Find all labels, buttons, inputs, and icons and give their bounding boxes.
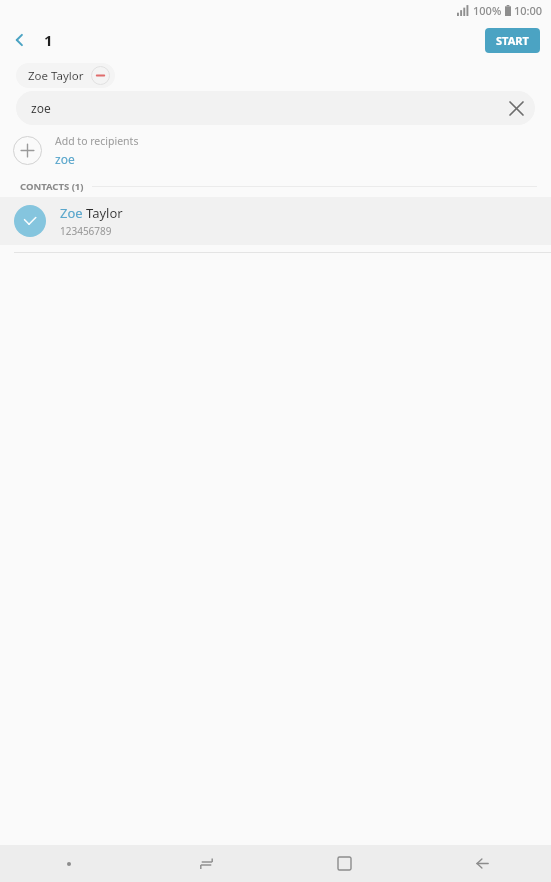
- button[interactable]: START: [485, 28, 540, 53]
- staticText: zoe: [55, 151, 75, 167]
- staticText: START: [496, 33, 529, 48]
- button[interactable]: Back: [0, 20, 40, 60]
- button[interactable]: Add to recipients: [0, 125, 551, 175]
- staticText: Zoe Taylor: [60, 204, 123, 222]
- staticText: 10:00: [514, 3, 543, 18]
- button[interactable]: Clear search: [502, 94, 530, 122]
- button[interactable]: Recents: [137, 845, 275, 882]
- button[interactable]: Back: [413, 845, 551, 882]
- staticText: CONTACTS (1): [20, 180, 84, 193]
- button[interactable]: Home: [275, 845, 413, 882]
- staticText: 123456789: [60, 224, 112, 238]
- staticText: 100%: [473, 3, 502, 18]
- other: Remove recipient: [91, 66, 110, 85]
- staticText: 1: [44, 30, 53, 50]
- staticText: Add to recipients: [55, 134, 139, 148]
- button[interactable]: zoe: [16, 91, 535, 125]
- other: Add to recipients: [13, 136, 42, 165]
- button[interactable]: Zoe Taylor: [16, 63, 115, 88]
- button[interactable]: Zoe Taylor: [0, 197, 551, 245]
- staticText: zoe: [31, 100, 51, 116]
- staticText: Zoe Taylor: [28, 68, 84, 84]
